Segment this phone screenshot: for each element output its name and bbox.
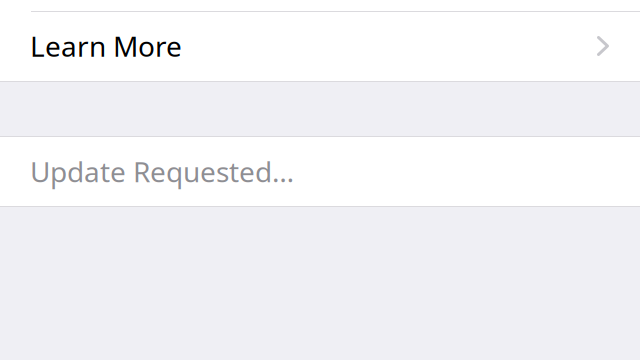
staticText: Learn More: [30, 27, 182, 65]
staticText: Update Requested…: [30, 153, 294, 190]
button[interactable]: Update Requested…: [0, 137, 640, 206]
button[interactable]: Learn More: [0, 11, 640, 81]
